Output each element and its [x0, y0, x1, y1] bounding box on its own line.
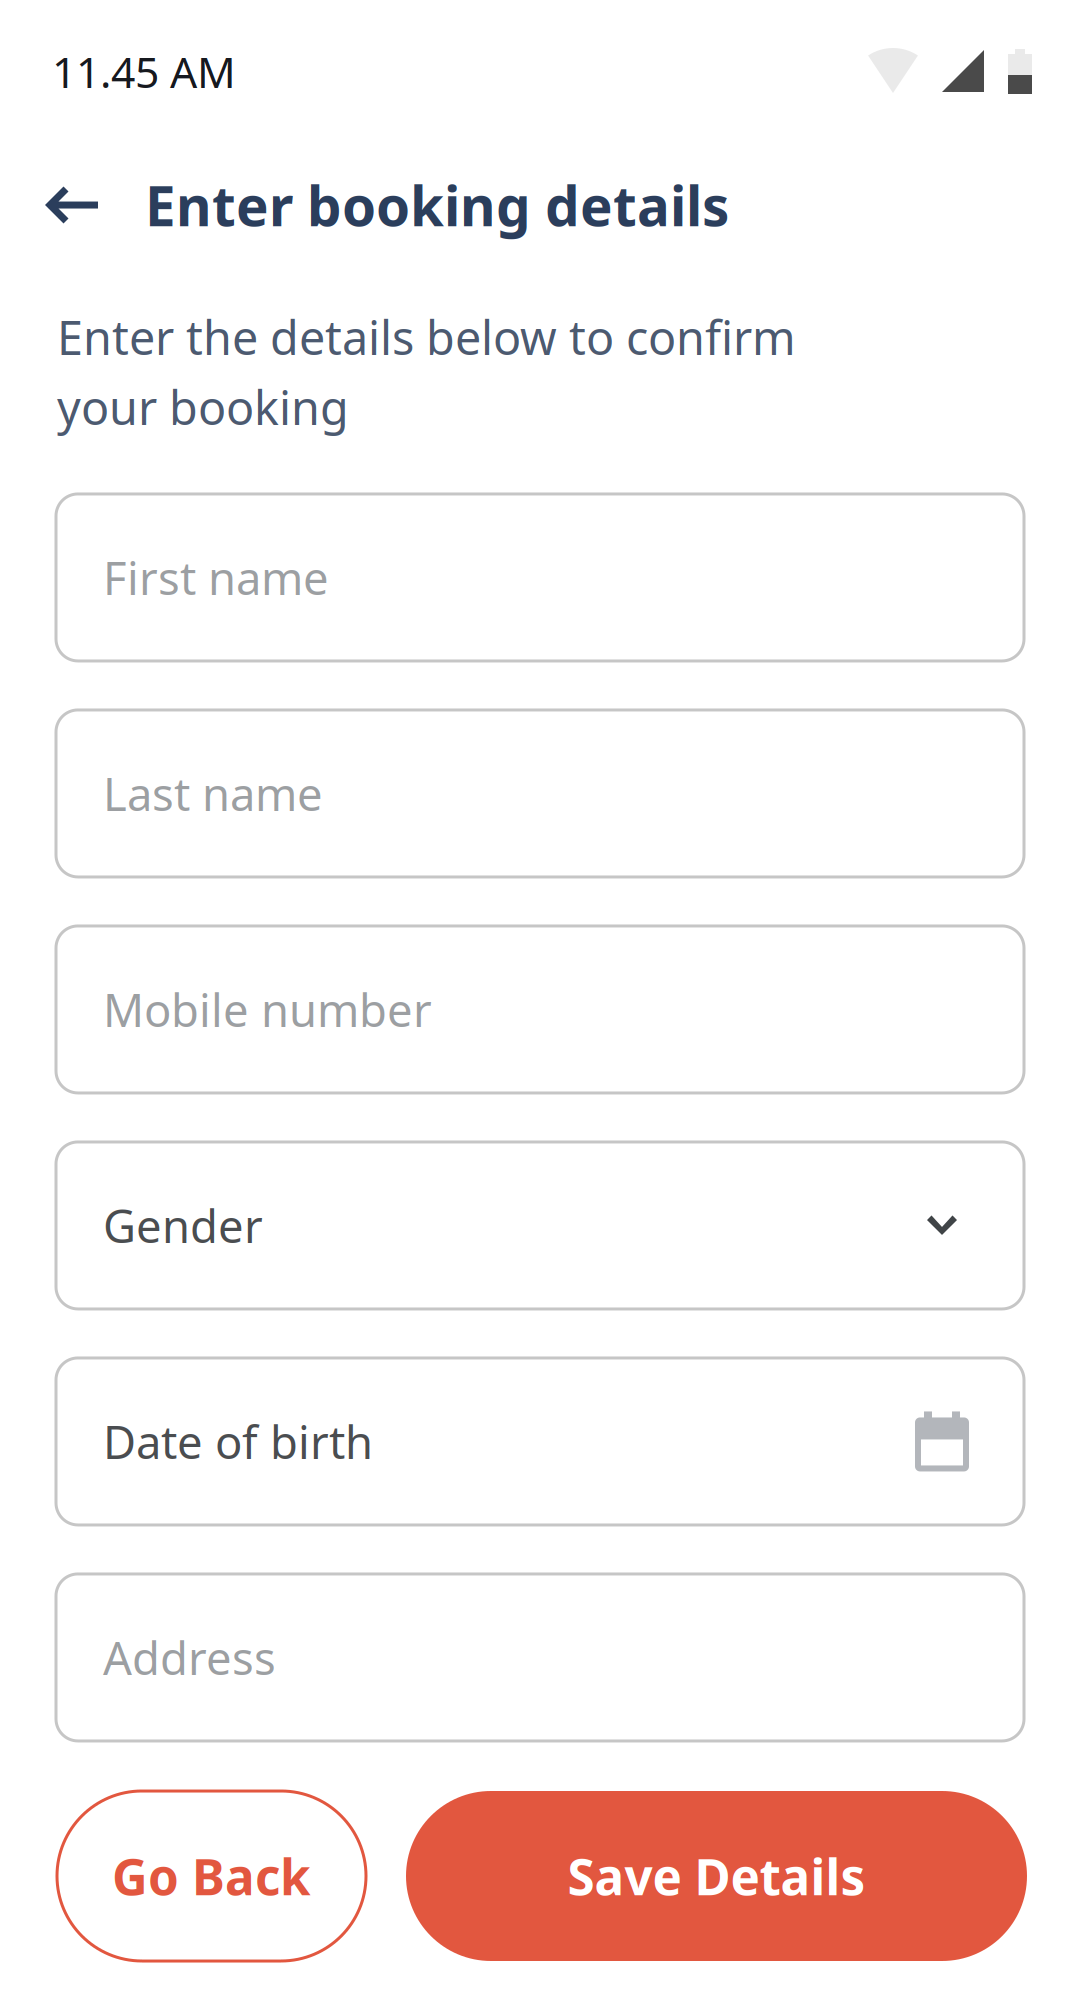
staticText: Enter the details below to confirm your … — [57, 306, 796, 438]
button[interactable]: Go Back — [57, 1791, 366, 1961]
staticText: Gender — [103, 1195, 263, 1255]
staticText: Go Back — [112, 1843, 311, 1909]
button[interactable]: Gender — [56, 1142, 1024, 1309]
button[interactable]: Last name — [56, 710, 1024, 877]
button[interactable]: Back — [38, 170, 104, 240]
staticText: Enter booking details — [145, 169, 729, 241]
button[interactable]: Save Details — [406, 1791, 1027, 1961]
staticText: Save Details — [567, 1843, 865, 1909]
button[interactable]: Mobile number — [56, 926, 1024, 1093]
staticText: 11.45 AM — [52, 43, 236, 100]
staticText: Mobile number — [103, 979, 432, 1039]
button[interactable]: Date of birth — [56, 1358, 1024, 1525]
staticText: First name — [103, 547, 329, 607]
button[interactable]: Address — [56, 1574, 1024, 1741]
staticText: Address — [103, 1627, 276, 1687]
button[interactable]: First name — [56, 494, 1024, 661]
staticText: Date of birth — [103, 1411, 373, 1471]
staticText: Last name — [103, 763, 323, 823]
